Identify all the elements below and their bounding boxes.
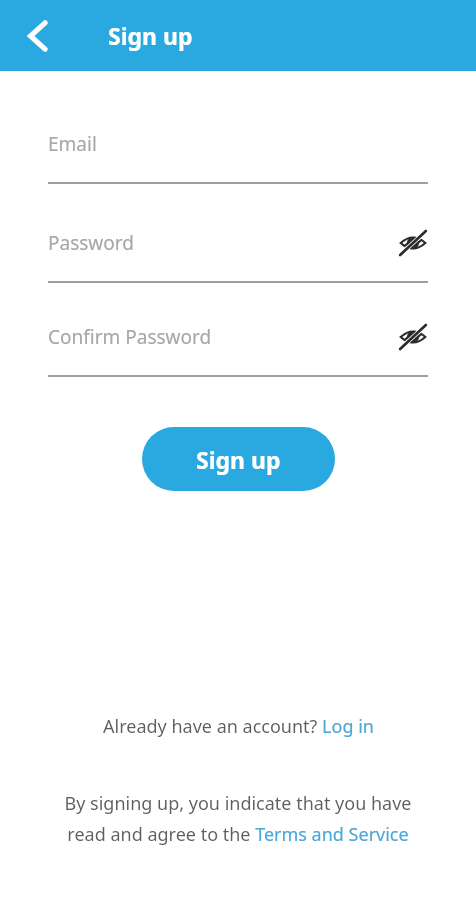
staticText: Password	[48, 230, 398, 256]
button[interactable]: Back	[14, 12, 62, 60]
button[interactable]: Sign up	[142, 427, 335, 491]
staticText: By signing up, you indicate that you hav…	[44, 791, 432, 846]
button[interactable]: Show password	[398, 322, 428, 352]
staticText: Email	[48, 131, 428, 157]
button[interactable]: Email	[48, 126, 428, 184]
button[interactable]: Already have an account? Log in	[0, 714, 476, 739]
button[interactable]: Confirm Password	[48, 319, 428, 377]
staticText: Already have an account? Log in	[103, 714, 374, 739]
button[interactable]: Show password	[398, 228, 428, 258]
staticText: Sign up	[196, 444, 281, 475]
button[interactable]: By signing up, you indicate that you hav…	[44, 791, 432, 846]
button[interactable]: Password	[48, 225, 428, 283]
staticText: Confirm Password	[48, 324, 398, 350]
staticText: Sign up	[108, 20, 193, 51]
